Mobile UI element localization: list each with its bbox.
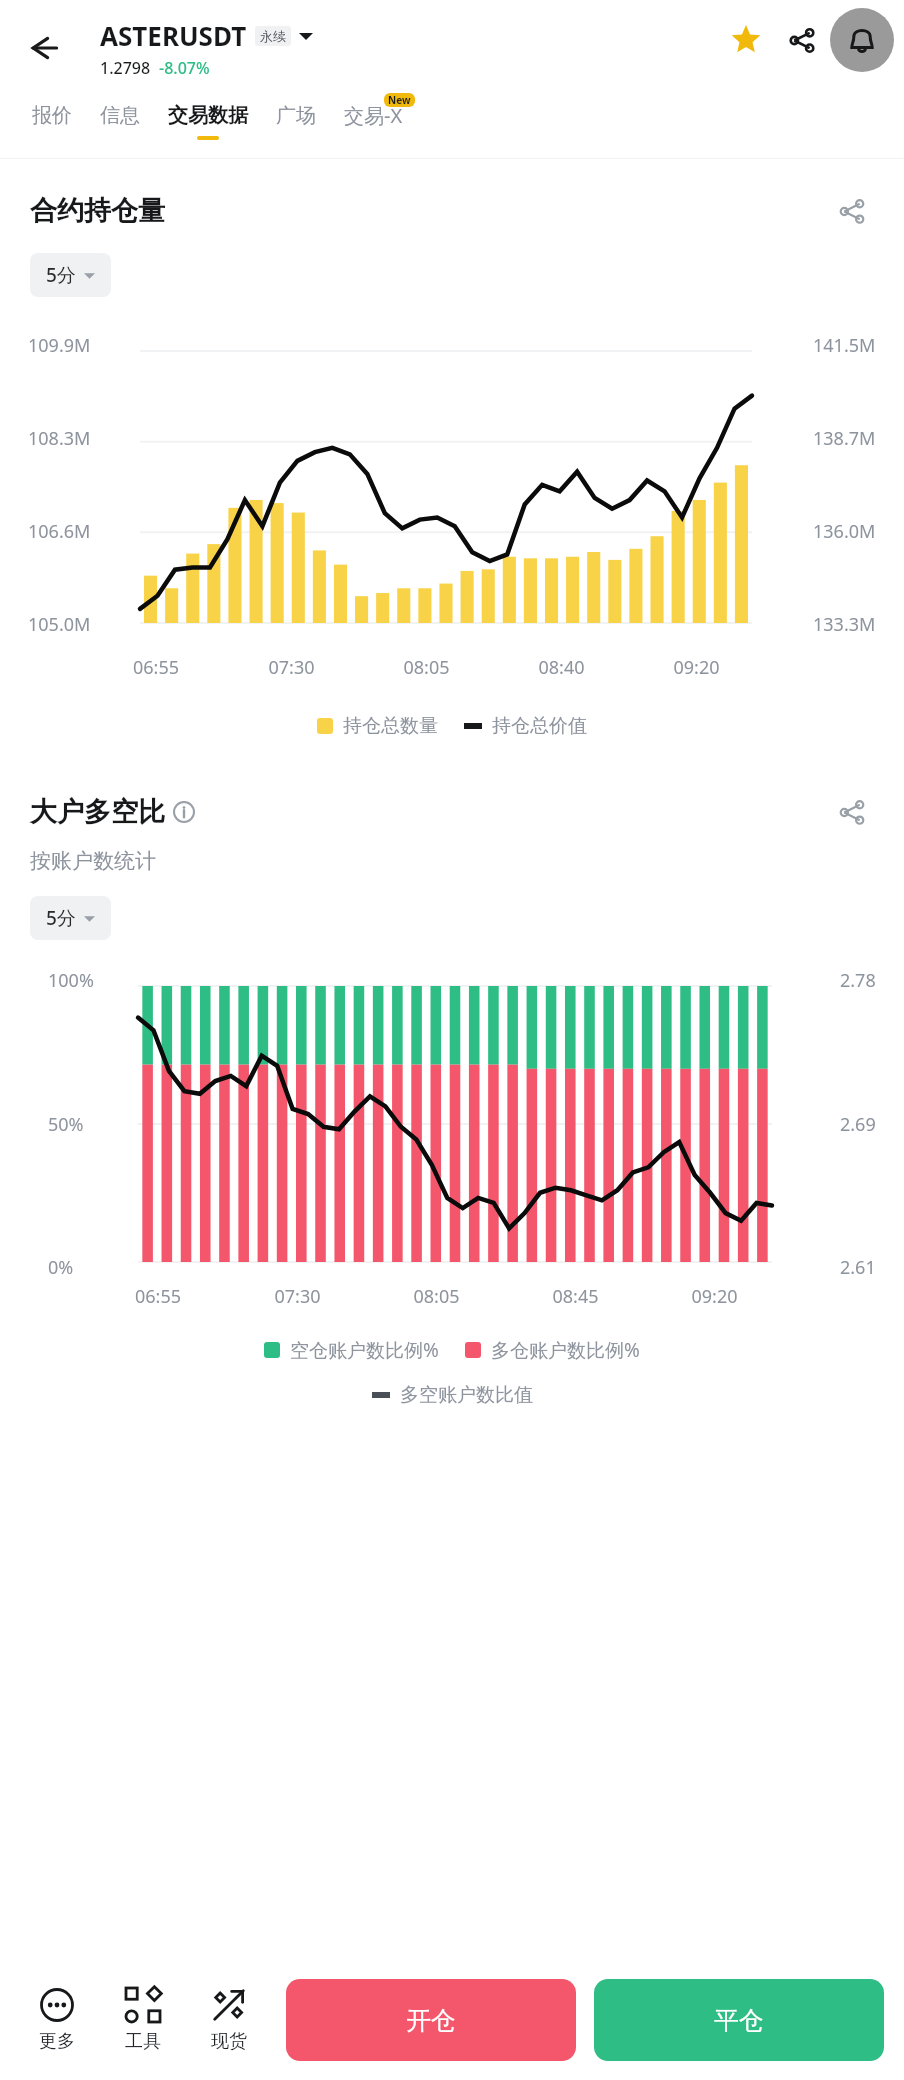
staticText: 09:20 [629, 655, 764, 680]
staticText: 100% [48, 968, 94, 993]
staticText: 多空账户数比值 [400, 1383, 533, 1407]
button[interactable]: 工具 [100, 1982, 186, 2059]
staticText: 09:20 [645, 1284, 784, 1309]
button[interactable]: 开仓 [286, 1979, 576, 2061]
staticText: 105.0M [28, 612, 91, 637]
button[interactable]: Share [774, 12, 830, 68]
staticText: 现货 [211, 2030, 247, 2053]
staticText: 08:05 [367, 1284, 506, 1309]
staticText: 108.3M [28, 426, 91, 451]
button[interactable]: 交易-X [330, 96, 417, 147]
staticText: 更多 [39, 2030, 75, 2053]
staticText: 平仓 [714, 2005, 764, 2036]
button[interactable]: 平仓 [594, 1979, 884, 2061]
staticText: 空仓账户数比例% [290, 1337, 439, 1363]
staticText: 2.69 [840, 1112, 876, 1137]
staticText: 06:55 [88, 1284, 228, 1309]
button[interactable]: Share chart [830, 189, 874, 233]
staticText: 138.7M [813, 426, 876, 451]
button[interactable]: 现货 [186, 1982, 272, 2059]
staticText: 106.6M [28, 519, 91, 544]
staticText: 大户多空比 [30, 795, 165, 829]
staticText: 5分 [46, 262, 76, 288]
staticText: 1.2798 [100, 57, 151, 79]
staticText: 信息 [100, 103, 140, 128]
staticText: 开仓 [406, 2005, 456, 2036]
staticText: 报价 [32, 103, 72, 128]
staticText: 50% [48, 1112, 84, 1137]
button[interactable]: Favorite [718, 12, 774, 68]
staticText: 08:45 [506, 1284, 645, 1309]
staticText: 06:55 [88, 655, 224, 680]
staticText: 2.78 [840, 968, 876, 993]
button[interactable]: 5分 [30, 896, 111, 940]
staticText: 持仓总数量 [343, 714, 438, 738]
staticText: 141.5M [813, 333, 876, 358]
staticText: 合约持仓量 [30, 194, 165, 228]
staticText: 08:40 [494, 655, 629, 680]
button[interactable]: 信息 [86, 97, 154, 146]
button[interactable]: Notifications [830, 8, 894, 72]
button[interactable]: 5分 [30, 253, 111, 297]
staticText: 136.0M [813, 519, 876, 544]
staticText: 永续 [260, 28, 286, 44]
staticText: New [388, 93, 411, 107]
staticText: 07:30 [228, 1284, 367, 1309]
button[interactable]: 更多 [14, 1982, 100, 2059]
staticText: -8.07% [159, 57, 210, 79]
staticText: 交易-X [344, 102, 403, 129]
button[interactable]: 报价 [18, 97, 86, 146]
button[interactable]: 交易数据 [154, 97, 262, 146]
staticText: 0% [48, 1255, 74, 1280]
staticText: 109.9M [28, 333, 91, 358]
staticText: 多仓账户数比例% [491, 1337, 640, 1363]
staticText: 按账户数统计 [30, 848, 156, 874]
button[interactable]: 广场 [262, 97, 330, 146]
staticText: 2.61 [840, 1255, 876, 1280]
staticText: 133.3M [813, 612, 876, 637]
button[interactable]: Share chart [830, 790, 874, 834]
staticText: 广场 [276, 103, 316, 128]
button[interactable]: Back [16, 20, 72, 76]
staticText: 08:05 [359, 655, 494, 680]
staticText: 07:30 [224, 655, 359, 680]
staticText: 5分 [46, 905, 76, 931]
staticText: 交易数据 [168, 103, 248, 128]
staticText: ASTERUSDT [100, 18, 247, 53]
staticText: 持仓总价值 [492, 714, 587, 738]
staticText: 工具 [125, 2030, 161, 2053]
